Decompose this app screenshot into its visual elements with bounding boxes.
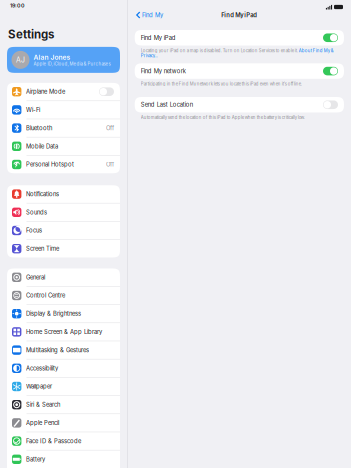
staticText: Sounds bbox=[26, 209, 47, 216]
button[interactable]: Home Screen & App Library bbox=[7, 323, 120, 341]
staticText: Apple ID, iCloud, Media & Purchases bbox=[33, 61, 110, 66]
staticText: Wi-Fi bbox=[26, 106, 40, 113]
button[interactable]: Screen Time bbox=[7, 240, 120, 257]
staticText: Find My iPad bbox=[141, 34, 176, 41]
button[interactable]: Sounds bbox=[7, 203, 120, 221]
staticText: Focus bbox=[26, 227, 42, 234]
staticText: Bluetooth bbox=[26, 124, 52, 132]
button[interactable]: Find My iPad bbox=[128, 30, 351, 45]
button[interactable]: Send Last Location bbox=[128, 97, 351, 112]
staticText: Battery bbox=[26, 456, 45, 463]
staticText: Find My bbox=[142, 11, 163, 19]
staticText: Accessibility bbox=[26, 365, 58, 372]
button[interactable]: Wallpaper bbox=[7, 378, 120, 395]
button[interactable]: Siri & Search bbox=[7, 396, 120, 413]
button[interactable]: AJ bbox=[7, 47, 120, 73]
staticText: Find My iPad bbox=[221, 11, 257, 19]
button[interactable]: Airplane Mode bbox=[7, 83, 120, 100]
button[interactable]: Display & Brightness bbox=[7, 305, 120, 322]
button[interactable]: Mobile Data bbox=[7, 137, 120, 155]
button[interactable]: Bluetooth bbox=[7, 119, 120, 137]
staticText: Multitasking & Gestures bbox=[26, 346, 89, 354]
button[interactable]: Focus bbox=[7, 222, 120, 239]
button[interactable]: Apple Pencil bbox=[7, 414, 120, 432]
staticText: Participating in the Find My network let… bbox=[141, 81, 302, 86]
button[interactable]: Battery bbox=[7, 450, 120, 468]
staticText: Face ID & Passcode bbox=[26, 437, 81, 445]
staticText: About Find My & bbox=[299, 48, 334, 53]
button[interactable]: Control Centre bbox=[7, 287, 120, 304]
button[interactable]: General bbox=[7, 268, 120, 286]
staticText: Control Centre bbox=[26, 292, 65, 299]
staticText: Settings bbox=[8, 27, 54, 41]
staticText: Display & Brightness bbox=[26, 310, 81, 317]
button[interactable]: Personal Hotspot bbox=[7, 156, 120, 173]
staticText: Off bbox=[106, 161, 114, 168]
staticText: Locating your iPad on a map is disabled.… bbox=[141, 48, 299, 53]
staticText: Notifications bbox=[26, 190, 59, 198]
staticText: Off bbox=[106, 124, 114, 132]
button[interactable]: Find My network bbox=[128, 63, 351, 79]
staticText: Screen Time bbox=[26, 245, 59, 252]
staticText: General bbox=[26, 274, 45, 281]
button[interactable]: Notifications bbox=[7, 185, 120, 203]
staticText: AJ bbox=[16, 56, 25, 64]
staticText: Apple Pencil bbox=[26, 419, 59, 426]
staticText: Find My network bbox=[141, 67, 186, 75]
button[interactable]: Multitasking & Gestures bbox=[7, 341, 120, 359]
staticText: 19:00 bbox=[10, 2, 25, 9]
button[interactable]: Face ID & Passcode bbox=[7, 432, 120, 450]
staticText: Siri & Search bbox=[26, 401, 60, 408]
button[interactable]: Accessibility bbox=[7, 359, 120, 377]
staticText: Alan Jones bbox=[33, 53, 70, 61]
staticText: Send Last Location bbox=[141, 101, 193, 108]
staticText: Privacy... bbox=[141, 53, 158, 58]
staticText: Mobile Data bbox=[26, 143, 58, 150]
button[interactable]: Back to Find My bbox=[133, 9, 166, 21]
staticText: Wallpaper bbox=[26, 383, 52, 390]
staticText: Airplane Mode bbox=[26, 88, 65, 95]
button[interactable]: Wi-Fi bbox=[7, 101, 120, 119]
staticText: Personal Hotspot bbox=[26, 161, 74, 168]
staticText: Home Screen & App Library bbox=[26, 328, 102, 335]
staticText: Automatically send the location of this … bbox=[141, 115, 305, 120]
